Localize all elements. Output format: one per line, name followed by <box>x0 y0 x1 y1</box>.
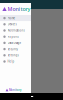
staticText: Settings <box>7 53 18 57</box>
staticText: n <box>15 5 18 13</box>
staticText: n <box>13 88 15 92</box>
staticText: i <box>15 88 16 92</box>
staticText: r <box>25 5 27 13</box>
button[interactable]: Security <box>0 46 31 52</box>
staticText: o <box>11 88 13 92</box>
staticText: Data Usage <box>7 41 21 45</box>
staticText: M <box>9 88 11 92</box>
staticText: y <box>20 88 21 92</box>
staticText: Notifications <box>7 29 24 32</box>
staticText: Reports <box>7 35 18 38</box>
button[interactable]: Home <box>0 15 31 21</box>
staticText: Security <box>7 47 17 51</box>
staticText: Home <box>7 16 15 20</box>
staticText: o <box>17 88 19 92</box>
staticText: t <box>16 88 17 92</box>
button[interactable]: Devices <box>0 21 31 27</box>
button[interactable]: Notifications <box>0 27 31 34</box>
staticText: Devices <box>7 22 16 26</box>
staticText: o <box>12 5 15 13</box>
button[interactable]: Reports <box>0 34 31 40</box>
staticText: Help <box>7 60 14 63</box>
button[interactable]: Help <box>0 58 31 65</box>
button[interactable]: Data Usage <box>0 40 31 46</box>
staticText: M <box>7 5 12 13</box>
staticText: y <box>27 5 30 13</box>
staticText: o <box>22 5 25 13</box>
staticText: t <box>20 5 22 13</box>
button[interactable]: Settings <box>0 52 31 58</box>
staticText: i <box>18 5 20 13</box>
staticText: r <box>19 88 20 92</box>
